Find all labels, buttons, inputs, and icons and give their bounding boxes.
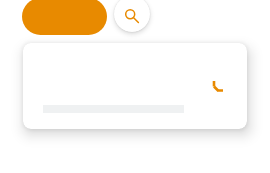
button[interactable]: Search xyxy=(114,0,150,32)
button[interactable]: Call xyxy=(23,43,247,129)
button[interactable]: Call xyxy=(207,74,227,94)
button[interactable] xyxy=(22,0,107,35)
